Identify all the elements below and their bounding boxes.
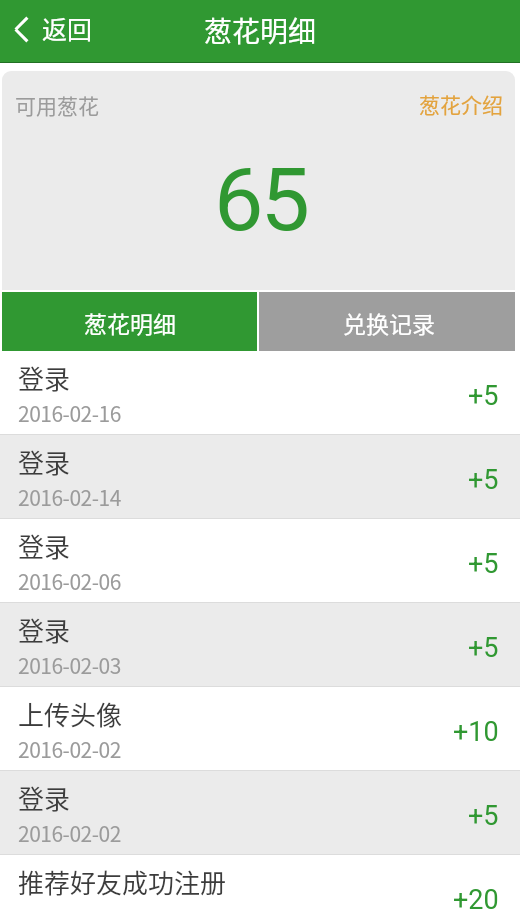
button[interactable]: 推荐好友成功注册	[0, 855, 520, 910]
staticText: 2016-02-03	[18, 650, 121, 680]
staticText: 登录	[18, 443, 71, 481]
staticText: 登录	[18, 359, 71, 397]
staticText: +5	[468, 800, 499, 832]
button[interactable]: 葱花明细	[2, 292, 257, 351]
staticText: 2016-02-02	[18, 818, 121, 848]
staticText: 2016-02-14	[18, 482, 121, 512]
staticText: 兑换记录	[343, 306, 435, 339]
staticText: +20	[453, 884, 499, 910]
staticText: 葱花明细	[84, 306, 176, 339]
button[interactable]: 登录	[0, 519, 520, 603]
button[interactable]: 上传头像	[0, 687, 520, 771]
button[interactable]: 兑换记录	[259, 292, 515, 351]
staticText: 上传头像	[18, 695, 123, 733]
staticText: 2016-02-06	[18, 566, 121, 596]
staticText: 推荐好友成功注册	[18, 863, 227, 901]
button[interactable]: 登录	[0, 771, 520, 855]
staticText: 可用葱花	[15, 90, 99, 120]
staticText: 葱花明细	[204, 10, 317, 51]
button[interactable]: 葱花介绍	[419, 89, 503, 119]
staticText: +10	[453, 716, 499, 748]
staticText: 返回	[42, 10, 93, 46]
staticText: 2016-02-02	[18, 734, 121, 764]
staticText: 登录	[18, 611, 71, 649]
staticText: 65	[214, 148, 307, 251]
staticText: 登录	[18, 527, 71, 565]
staticText: +5	[468, 548, 499, 580]
staticText: +5	[468, 380, 499, 412]
button[interactable]: 登录	[0, 351, 520, 435]
button[interactable]: 登录	[0, 435, 520, 519]
staticText: +5	[468, 632, 499, 664]
staticText: 登录	[18, 779, 71, 817]
staticText: 2016-02-16	[18, 398, 121, 428]
staticText: +5	[468, 464, 499, 496]
button[interactable]: 登录	[0, 603, 520, 687]
button[interactable]: 返回	[14, 0, 93, 58]
